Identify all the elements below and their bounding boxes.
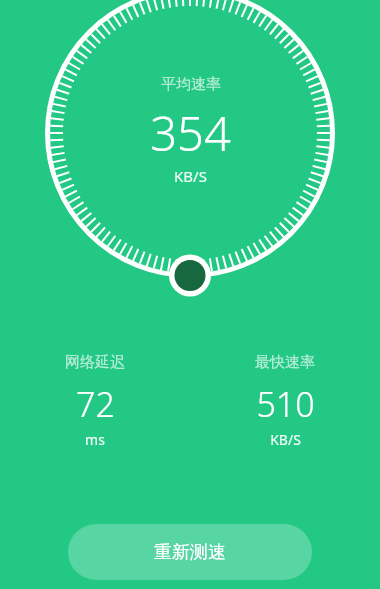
staticText: 最快速率 — [255, 353, 315, 372]
staticText: KB/S — [270, 430, 301, 449]
staticText: 354 — [150, 101, 231, 165]
staticText: 重新测速 — [154, 541, 226, 564]
staticText: KB/S — [174, 166, 207, 186]
button[interactable]: 重新测速 — [68, 524, 312, 580]
staticText: ms — [85, 430, 105, 449]
staticText: 平均速率 — [161, 75, 221, 94]
staticText: 72 — [76, 381, 115, 427]
staticText: 网络延迟 — [65, 353, 125, 372]
staticText: 510 — [256, 381, 315, 427]
